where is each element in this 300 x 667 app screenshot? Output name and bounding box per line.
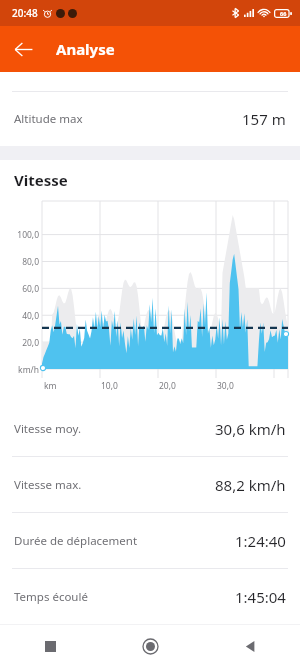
button[interactable]: Durée de déplacement [0, 513, 300, 568]
button[interactable]: Home [100, 625, 200, 667]
staticText: 1:45:04 [235, 587, 286, 607]
button[interactable]: Altitude max [0, 92, 300, 146]
staticText: 30,0 [217, 380, 234, 392]
staticText: 157 m [242, 109, 286, 129]
staticText: Vitesse max. [14, 477, 82, 493]
staticText: 40,0 [0, 310, 39, 322]
staticText: 1:24:40 [235, 531, 286, 551]
staticText: 66 [280, 10, 287, 17]
staticText: 30,6 km/h [215, 419, 286, 439]
staticText: Durée de déplacement [14, 533, 138, 549]
staticText: Analyse [56, 39, 115, 59]
staticText: Altitude max [14, 111, 83, 127]
button[interactable]: Back [200, 625, 300, 667]
staticText: 88,2 km/h [215, 475, 286, 495]
button[interactable]: Vitesse moy. [0, 401, 300, 456]
button[interactable]: Recents [0, 625, 100, 667]
staticText: 60,0 [0, 283, 39, 295]
button[interactable]: Temps écoulé [0, 569, 300, 624]
staticText: km/h [0, 364, 39, 376]
staticText: km [44, 380, 57, 392]
staticText: 80,0 [0, 256, 39, 268]
staticText: 10,0 [101, 380, 118, 392]
staticText: 100,0 [0, 229, 39, 241]
staticText: Temps écoulé [14, 589, 88, 605]
button[interactable]: Vitesse max. [0, 457, 300, 512]
staticText: 20:48 [12, 6, 38, 20]
staticText: 20,0 [0, 337, 39, 349]
staticText: Vitesse moy. [14, 421, 81, 437]
staticText: 20,0 [159, 380, 176, 392]
staticText: Vitesse [14, 170, 68, 190]
button[interactable]: Back [5, 31, 41, 67]
